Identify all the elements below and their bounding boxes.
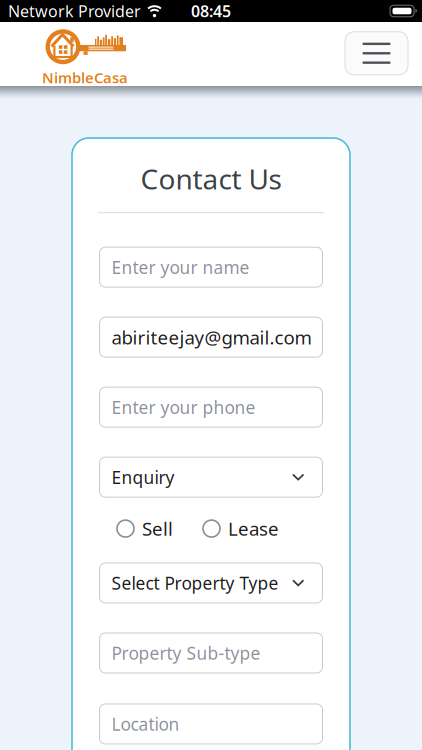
staticText: Location (111, 712, 179, 735)
button[interactable]: Sell (117, 516, 173, 541)
staticText: Enquiry (111, 466, 174, 489)
staticText: Lease (228, 516, 279, 541)
button[interactable]: Location (99, 704, 322, 744)
button[interactable]: Enquiry (99, 457, 322, 497)
button[interactable]: Property Sub-type (99, 633, 322, 673)
button[interactable]: Menu (345, 32, 408, 75)
button[interactable]: Select Property Type (99, 563, 322, 603)
button[interactable]: Lease (203, 516, 279, 541)
button[interactable]: Enter your name (99, 247, 322, 287)
button[interactable]: abiriteejay@gmail.com (99, 317, 322, 357)
staticText: Sell (142, 516, 173, 541)
staticText: abiriteejay@gmail.com (111, 325, 311, 350)
button[interactable]: Enter your phone (99, 387, 322, 427)
staticText: Enter your phone (111, 396, 255, 419)
staticText: Contact Us (140, 160, 281, 197)
button[interactable]: NimbleCasa home (42, 26, 128, 87)
staticText: NimbleCasa (42, 68, 128, 87)
staticText: Property Sub-type (111, 641, 260, 664)
staticText: 08:45 (191, 0, 231, 22)
staticText: Select Property Type (111, 571, 278, 594)
staticText: Enter your name (111, 256, 249, 279)
staticText: Network Provider (8, 0, 141, 22)
